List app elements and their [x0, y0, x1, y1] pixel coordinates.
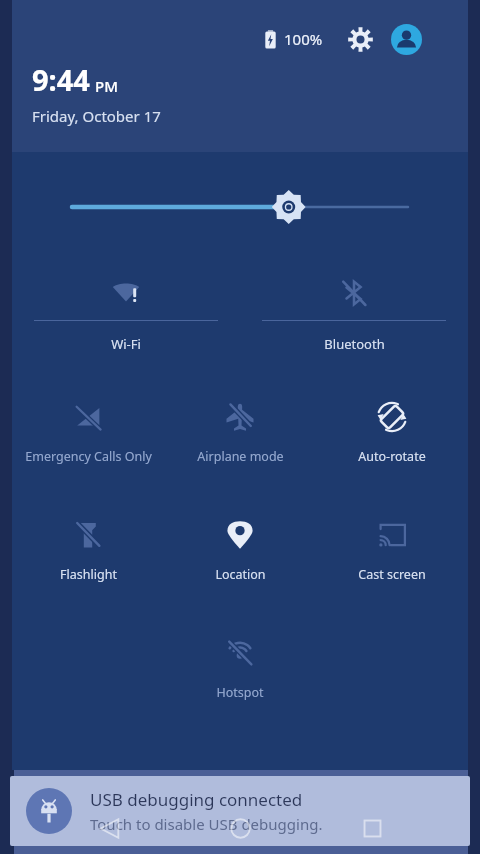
staticText: 9:44	[32, 60, 90, 99]
staticText: Airplane mode	[197, 448, 284, 465]
button[interactable]: Bluetooth	[240, 262, 468, 374]
staticText: Touch to disable USB debugging.	[90, 814, 323, 834]
button[interactable]: Emergency Calls Only	[12, 388, 164, 506]
staticText: Cast screen	[358, 566, 426, 583]
staticText: Wi-Fi	[111, 335, 141, 353]
staticText: 100%	[284, 29, 323, 49]
button[interactable]: Brightness	[12, 152, 468, 262]
staticText: Flashlight	[60, 566, 117, 583]
button[interactable]: User account	[389, 22, 423, 56]
staticText: Location	[215, 566, 266, 583]
button[interactable]: Hotspot	[164, 624, 316, 742]
button[interactable]: Home	[217, 805, 263, 851]
button[interactable]: Airplane mode	[164, 388, 316, 506]
staticText: Friday, October 17	[32, 106, 161, 126]
staticText: Auto-rotate	[358, 448, 426, 465]
button[interactable]: USB debugging connected	[10, 776, 470, 846]
button[interactable]: Cast screen	[316, 506, 468, 624]
staticText: PM	[95, 76, 118, 96]
staticText: Hotspot	[216, 684, 264, 701]
staticText: Emergency Calls Only	[25, 448, 152, 465]
button[interactable]: Auto-rotate	[316, 388, 468, 506]
button[interactable]: Location	[164, 506, 316, 624]
button[interactable]: Settings	[343, 22, 377, 56]
button[interactable]: Flashlight	[12, 506, 164, 624]
button[interactable]: Recent apps	[349, 805, 395, 851]
button[interactable]: Back	[86, 805, 132, 851]
button[interactable]: Wi-Fi	[12, 262, 240, 374]
staticText: USB debugging connected	[90, 788, 303, 811]
staticText: Bluetooth	[324, 335, 385, 353]
